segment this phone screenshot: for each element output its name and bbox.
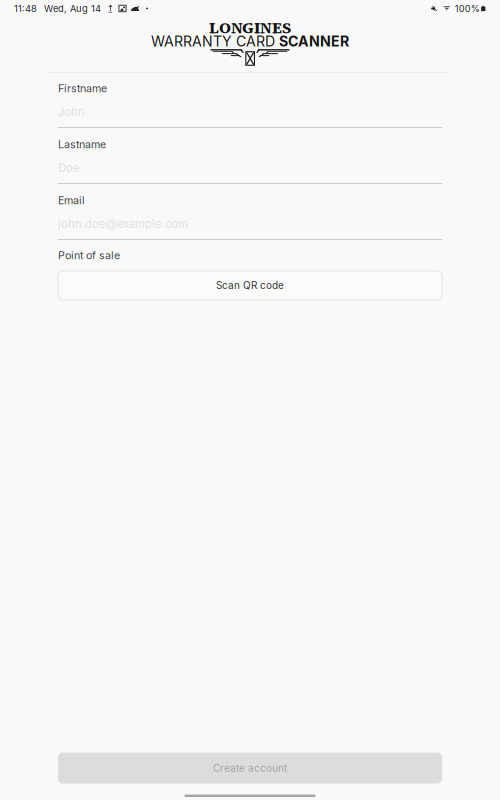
staticText: 11:48 <box>14 3 37 14</box>
staticText: Doe <box>58 161 80 175</box>
staticText: Wed, Aug 14 <box>44 3 101 14</box>
staticText: John <box>58 105 85 119</box>
staticText: Point of sale <box>58 249 120 262</box>
button[interactable]: Create account <box>58 752 442 783</box>
staticText: Lastname <box>58 138 106 151</box>
staticText: WARRANTY CARD SCANNER <box>151 33 349 50</box>
staticText: Create account <box>213 762 287 774</box>
staticText: Email <box>58 194 85 207</box>
staticText: 100% <box>455 3 480 14</box>
staticText: Scan QR code <box>216 279 284 291</box>
button[interactable]: Scan QR code <box>58 271 442 300</box>
staticText: LONGINES <box>209 17 291 39</box>
staticText: john.doe@example.com <box>58 217 188 231</box>
staticText: Firstname <box>58 82 107 95</box>
